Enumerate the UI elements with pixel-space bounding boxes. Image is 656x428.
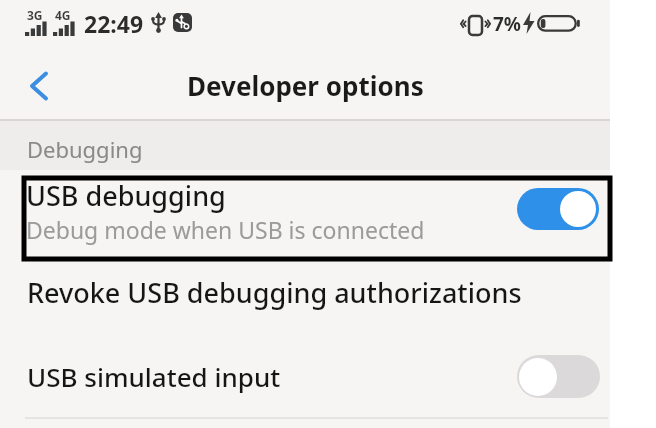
staticText: 22:49 [84, 8, 144, 39]
button[interactable] [517, 355, 600, 398]
button[interactable]: USB debugging [0, 170, 610, 263]
staticText: 3G [27, 7, 43, 23]
button[interactable]: USB simulated input [0, 338, 610, 414]
staticText: Revoke USB debugging authorizations [27, 274, 522, 311]
button[interactable] [517, 188, 599, 230]
staticText: Developer options [187, 68, 424, 103]
staticText: USB simulated input [27, 359, 281, 394]
staticText: USB debugging [26, 177, 226, 214]
staticText: Debugging [27, 134, 143, 164]
button[interactable]: Revoke USB debugging authorizations [0, 259, 610, 326]
staticText: 7% [493, 11, 522, 37]
button[interactable] [20, 62, 64, 106]
staticText: 4G [55, 7, 71, 23]
staticText: Debug mode when USB is connected [26, 214, 425, 245]
